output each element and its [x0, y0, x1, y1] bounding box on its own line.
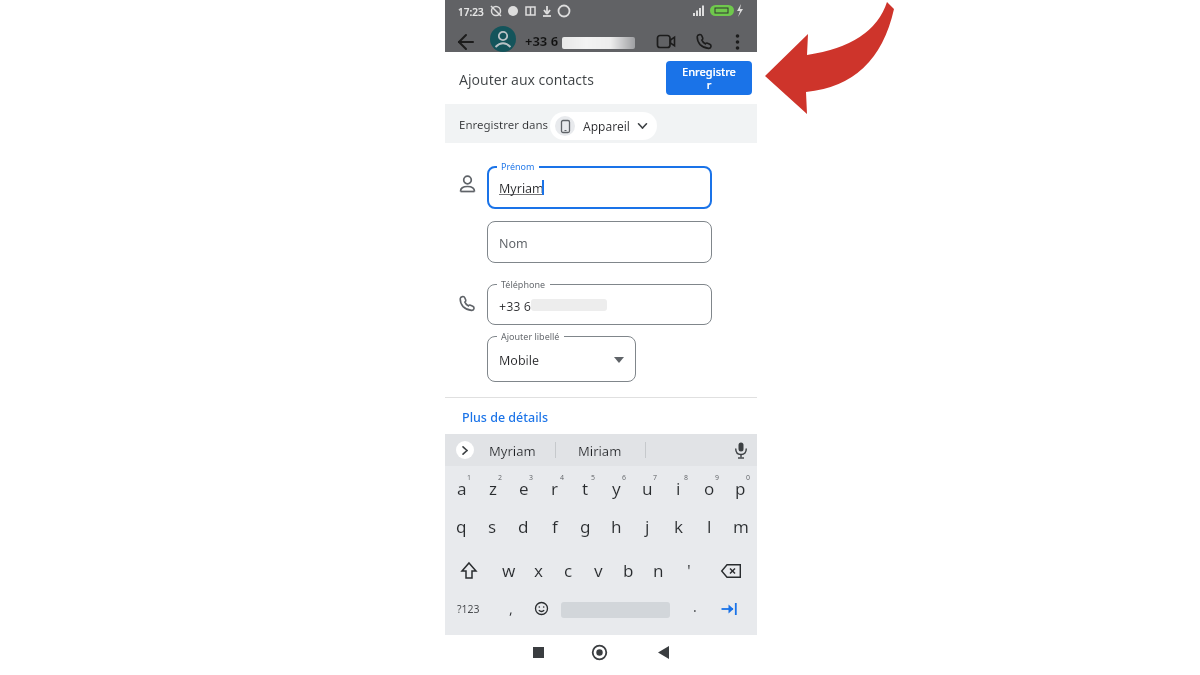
- button[interactable]: [592, 645, 607, 660]
- button[interactable]: s: [477, 509, 508, 543]
- button[interactable]: [735, 34, 740, 50]
- button[interactable]: v: [583, 553, 614, 587]
- button[interactable]: ': [673, 553, 704, 587]
- button[interactable]: b: [613, 553, 644, 587]
- button[interactable]: Enregistre r: [666, 61, 752, 95]
- button[interactable]: [721, 602, 738, 616]
- button[interactable]: e: [508, 471, 539, 505]
- button[interactable]: [721, 564, 741, 578]
- staticText: g: [580, 515, 591, 538]
- button[interactable]: [658, 646, 669, 659]
- button[interactable]: Miriam: [578, 442, 622, 460]
- staticText: w: [502, 559, 516, 582]
- button[interactable]: i: [663, 471, 694, 505]
- button[interactable]: d: [508, 509, 539, 543]
- button[interactable]: j: [632, 509, 663, 543]
- staticText: 9: [715, 473, 720, 483]
- button[interactable]: c: [553, 553, 584, 587]
- button[interactable]: m: [725, 509, 756, 543]
- staticText: Enregistrer dans: [459, 117, 549, 133]
- staticText: Mobile: [499, 352, 540, 369]
- button[interactable]: u: [632, 471, 663, 505]
- staticText: 2: [498, 473, 503, 483]
- staticText: 5: [591, 473, 596, 483]
- button[interactable]: [456, 441, 474, 459]
- staticText: d: [518, 515, 529, 538]
- button[interactable]: r: [539, 471, 570, 505]
- staticText: b: [623, 559, 634, 582]
- button[interactable]: k: [663, 509, 694, 543]
- button[interactable]: Myriam: [489, 442, 536, 460]
- button[interactable]: [487, 336, 636, 382]
- staticText: v: [594, 559, 603, 582]
- staticText: e: [519, 477, 529, 500]
- staticText: 17:23: [458, 5, 484, 19]
- button[interactable]: w: [493, 553, 524, 587]
- staticText: Myriam: [499, 180, 544, 197]
- staticText: r: [551, 477, 559, 500]
- button[interactable]: Appareil: [555, 112, 647, 140]
- button[interactable]: [735, 442, 747, 459]
- button[interactable]: g: [570, 509, 601, 543]
- button[interactable]: Plus de détails: [462, 409, 549, 426]
- staticText: x: [534, 559, 543, 582]
- button[interactable]: [458, 34, 474, 50]
- staticText: 3: [529, 473, 534, 483]
- staticText: y: [612, 477, 621, 500]
- button[interactable]: h: [601, 509, 632, 543]
- staticText: Prénom: [501, 160, 535, 172]
- button[interactable]: o: [694, 471, 725, 505]
- staticText: f: [552, 515, 558, 538]
- button[interactable]: t: [570, 471, 601, 505]
- staticText: 4: [560, 473, 565, 483]
- button[interactable]: [461, 562, 477, 579]
- staticText: h: [611, 515, 622, 538]
- staticText: l: [707, 515, 712, 538]
- button[interactable]: .: [693, 597, 697, 616]
- staticText: 1: [467, 473, 472, 483]
- staticText: Ajouter libellé: [501, 330, 560, 342]
- staticText: t: [582, 477, 589, 500]
- button[interactable]: [696, 33, 713, 50]
- button[interactable]: p: [725, 471, 756, 505]
- button[interactable]: a: [446, 471, 477, 505]
- staticText: +33 6: [499, 298, 531, 315]
- button[interactable]: [487, 284, 712, 325]
- staticText: o: [704, 477, 715, 500]
- button[interactable]: [657, 35, 676, 49]
- staticText: n: [653, 559, 664, 582]
- staticText: Téléphone: [501, 278, 546, 290]
- staticText: Enregistre r: [682, 64, 736, 92]
- staticText: 0: [746, 473, 751, 483]
- staticText: i: [676, 477, 681, 500]
- staticText: p: [735, 477, 746, 500]
- button[interactable]: [487, 221, 712, 263]
- staticText: 8: [684, 473, 689, 483]
- staticText: q: [456, 515, 467, 538]
- staticText: Nom: [499, 235, 528, 252]
- staticText: a: [457, 477, 467, 500]
- staticText: Appareil: [583, 118, 630, 134]
- staticText: 7: [653, 473, 658, 483]
- staticText: z: [489, 477, 497, 500]
- staticText: ': [687, 559, 691, 582]
- staticText: 6: [622, 473, 627, 483]
- button[interactable]: z: [477, 471, 508, 505]
- button[interactable]: q: [446, 509, 477, 543]
- button[interactable]: n: [643, 553, 674, 587]
- button[interactable]: ?123: [457, 602, 480, 616]
- button[interactable]: ,: [509, 599, 513, 618]
- staticText: u: [642, 477, 653, 500]
- staticText: k: [674, 515, 684, 538]
- button[interactable]: l: [694, 509, 725, 543]
- staticText: j: [645, 515, 650, 538]
- staticText: c: [564, 559, 573, 582]
- button[interactable]: [535, 602, 548, 615]
- button[interactable]: y: [601, 471, 632, 505]
- button[interactable]: x: [523, 553, 554, 587]
- button[interactable]: [487, 166, 712, 209]
- button[interactable]: f: [539, 509, 570, 543]
- staticText: +33 6: [525, 32, 559, 50]
